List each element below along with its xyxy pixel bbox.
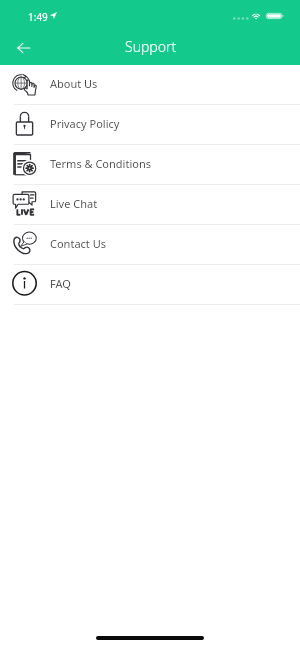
button[interactable]: Back	[9, 34, 37, 62]
staticText: Privacy Policy	[50, 116, 120, 131]
button[interactable]: About Us	[0, 65, 300, 104]
button[interactable]: FAQ	[0, 265, 300, 304]
staticText: Support	[125, 37, 177, 56]
staticText: Live Chat	[50, 196, 98, 211]
staticText: Terms & Conditions	[50, 156, 151, 171]
button[interactable]: Live Chat	[0, 185, 300, 224]
button[interactable]: Terms & Conditions	[0, 145, 300, 184]
button[interactable]: Privacy Policy	[0, 105, 300, 144]
staticText: FAQ	[50, 276, 71, 291]
button[interactable]: Contact Us	[0, 225, 300, 264]
staticText: 1:49	[28, 10, 48, 24]
staticText: Contact Us	[50, 236, 106, 251]
staticText: About Us	[50, 76, 98, 91]
